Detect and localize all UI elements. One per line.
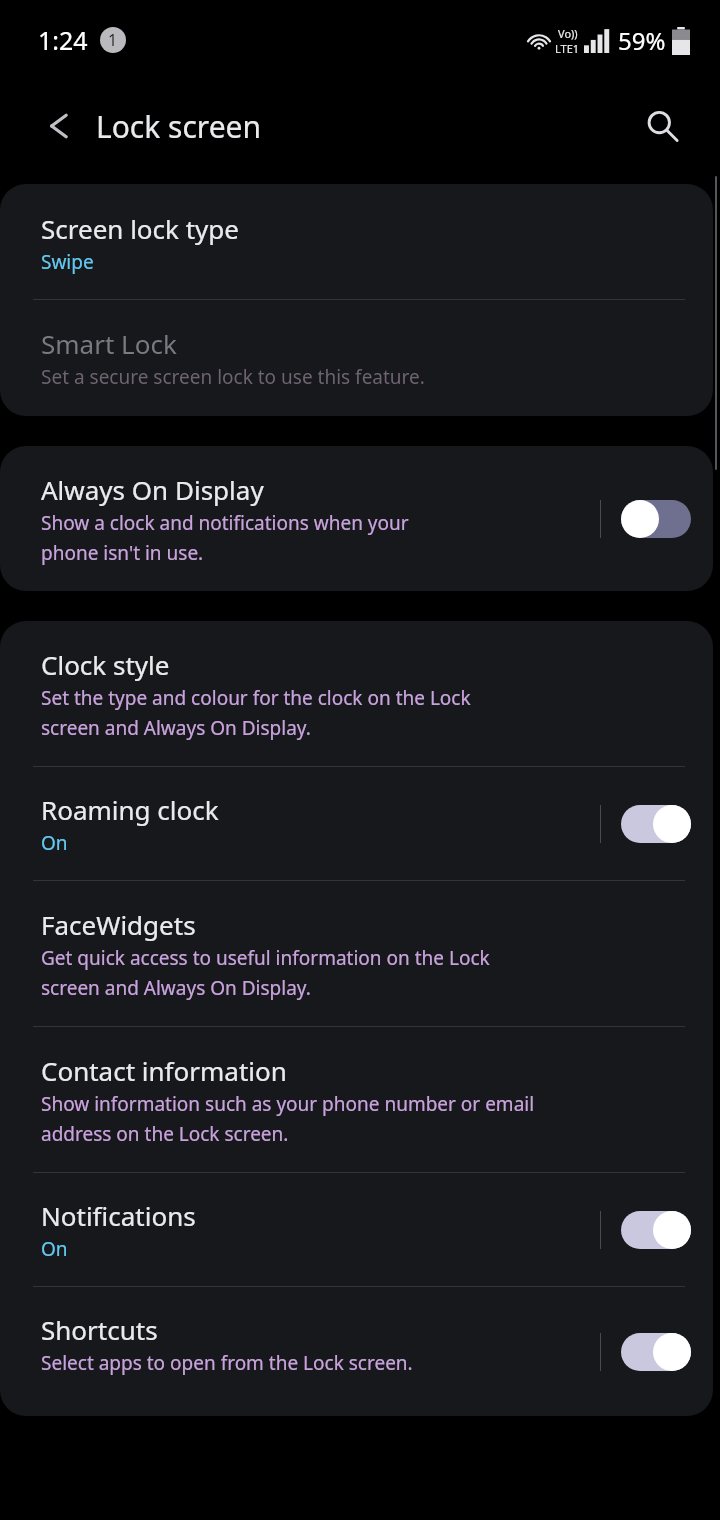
button[interactable]: Notifications [0, 1173, 713, 1286]
staticText: Show a clock and notifications when your… [41, 510, 409, 565]
button[interactable]: Contact information [0, 1027, 713, 1172]
staticText: Get quick access to useful information o… [41, 945, 490, 1000]
staticText: 1:24 [38, 23, 88, 57]
button[interactable]: Toggle off [600, 477, 713, 561]
staticText: Set a secure screen lock to use this fea… [41, 364, 425, 390]
button[interactable]: Back [30, 99, 84, 153]
button[interactable]: Toggle on [600, 782, 713, 866]
staticText: Contact information [41, 1053, 287, 1088]
staticText: Vo)) [558, 26, 578, 41]
button[interactable]: Toggle on [600, 1188, 713, 1272]
button[interactable]: Toggle on [600, 1310, 713, 1394]
staticText: Lock screen [96, 106, 262, 147]
staticText: Clock style [41, 647, 170, 682]
button[interactable]: Screen lock type [0, 184, 713, 299]
button[interactable]: FaceWidgets [0, 881, 713, 1026]
button[interactable]: Shortcuts [0, 1287, 713, 1416]
button[interactable]: Always On Display [0, 446, 713, 591]
staticText: LTE1 [555, 41, 580, 56]
staticText: Screen lock type [41, 211, 239, 246]
staticText: On [41, 1236, 68, 1262]
staticText: Smart Lock [41, 326, 177, 361]
staticText: On [41, 830, 68, 856]
staticText: Always On Display [41, 472, 264, 507]
staticText: Swipe [41, 249, 94, 275]
button[interactable]: Roaming clock [0, 767, 713, 880]
button[interactable]: Search [634, 98, 690, 154]
button[interactable]: Smart Lock [0, 300, 713, 416]
staticText: Notifications [41, 1198, 196, 1233]
staticText: Set the type and colour for the clock on… [41, 685, 471, 740]
staticText: Shortcuts [41, 1312, 158, 1347]
staticText: Roaming clock [41, 792, 219, 827]
staticText: 59% [618, 24, 666, 57]
staticText: 1 [108, 29, 118, 51]
button[interactable]: Clock style [0, 621, 713, 766]
staticText: FaceWidgets [41, 907, 196, 942]
staticText: Select apps to open from the Lock screen… [41, 1350, 413, 1376]
staticText: Show information such as your phone numb… [41, 1091, 535, 1146]
